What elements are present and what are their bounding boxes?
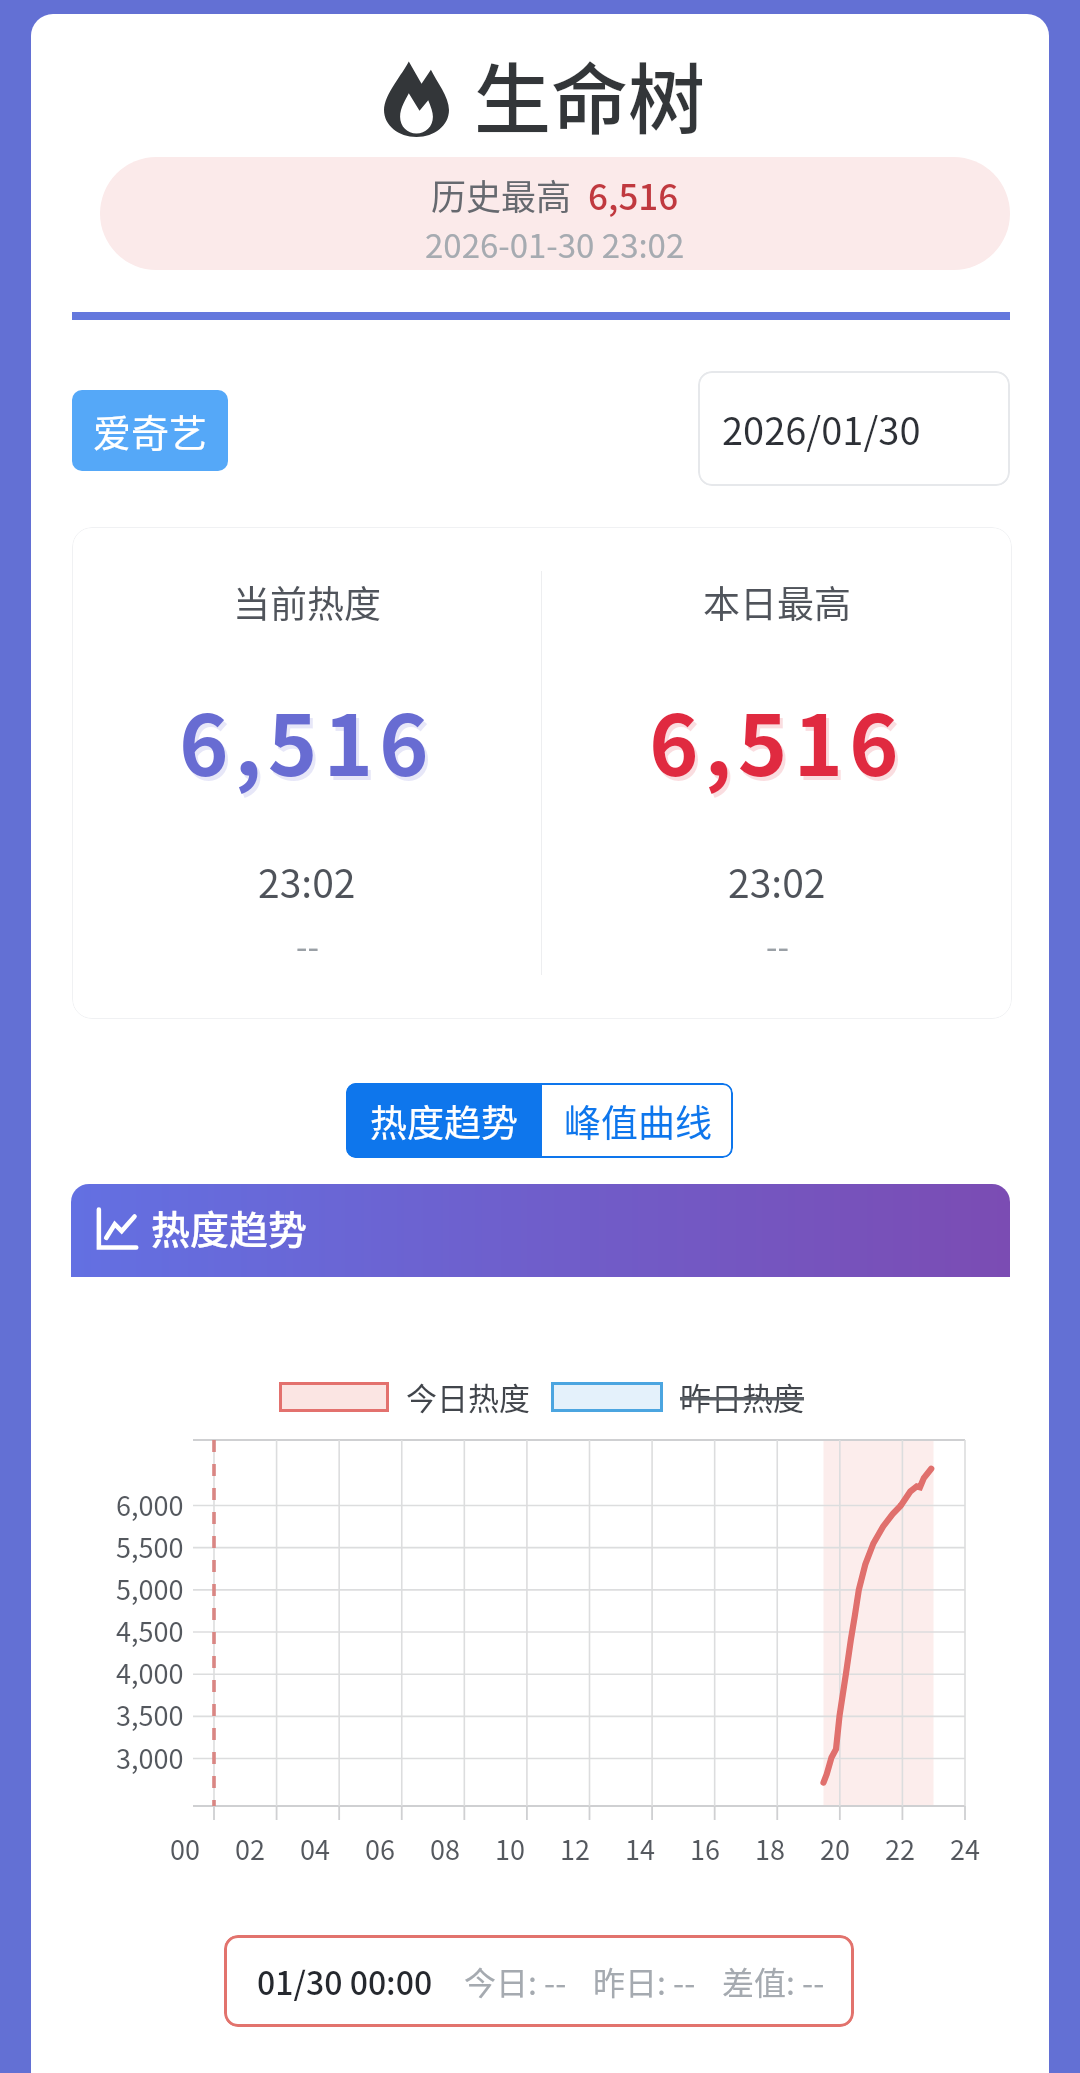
staticText: 今日热度 (406, 1374, 530, 1419)
staticText: 本日最高 (703, 575, 851, 629)
staticText: 6,000 (116, 1485, 184, 1524)
staticText: 3,500 (116, 1695, 184, 1734)
staticText: 20 (820, 1829, 850, 1868)
staticText: 23:02 (728, 853, 826, 909)
button[interactable]: 历史最高 (100, 157, 1010, 270)
staticText: -- (296, 921, 319, 969)
staticText: 16 (690, 1829, 720, 1868)
staticText: 6,516 (588, 169, 679, 220)
other: Trend chart (95, 1207, 138, 1250)
staticText: 热度趋势 (151, 1199, 308, 1255)
staticText: 12 (560, 1829, 590, 1868)
staticText: 23:02 (258, 853, 356, 909)
staticText: 2026/01/30 (722, 401, 921, 456)
staticText: 昨日: -- (593, 1958, 696, 2004)
staticText: 02 (235, 1829, 265, 1868)
staticText: 差值: -- (722, 1958, 825, 2004)
staticText: 昨日热度 (680, 1374, 804, 1419)
staticText: 01/30 00:00 (257, 1958, 433, 2004)
staticText: 6,516 (179, 679, 435, 801)
staticText: 6,516 (182, 683, 438, 805)
staticText: 4,000 (116, 1653, 184, 1692)
staticText: 22 (885, 1829, 915, 1868)
staticText: -- (766, 921, 789, 969)
staticText: 热度趋势 (370, 1094, 518, 1148)
button[interactable]: 热度趋势 (346, 1083, 542, 1158)
button[interactable]: 01/30 00:00 (224, 1935, 854, 2027)
staticText: 5,000 (116, 1569, 184, 1608)
staticText: 18 (755, 1829, 785, 1868)
staticText: 24 (950, 1829, 980, 1868)
staticText: 10 (495, 1829, 525, 1868)
other: Logo (383, 61, 450, 137)
staticText: 00 (170, 1829, 200, 1868)
staticText: 峰值曲线 (564, 1094, 712, 1148)
staticText: 08 (430, 1829, 460, 1868)
staticText: 6,516 (649, 679, 905, 801)
staticText: 6,516 (652, 683, 908, 805)
staticText: 生命树 (474, 39, 705, 150)
staticText: 今日: -- (464, 1958, 567, 2004)
staticText: 4,500 (116, 1611, 184, 1650)
staticText: 爱奇艺 (93, 403, 208, 458)
staticText: 5,500 (116, 1527, 184, 1566)
staticText: 3,000 (116, 1738, 184, 1777)
staticText: 04 (300, 1829, 330, 1868)
staticText: 14 (625, 1829, 655, 1868)
button[interactable]: 爱奇艺 (72, 390, 228, 471)
button[interactable]: 峰值曲线 (542, 1083, 733, 1158)
staticText: 2026-01-30 23:02 (425, 220, 685, 268)
staticText: 历史最高 (431, 169, 572, 220)
button[interactable]: 2026/01/30 (698, 371, 1010, 486)
staticText: 06 (365, 1829, 395, 1868)
staticText: 当前热度 (233, 575, 381, 629)
